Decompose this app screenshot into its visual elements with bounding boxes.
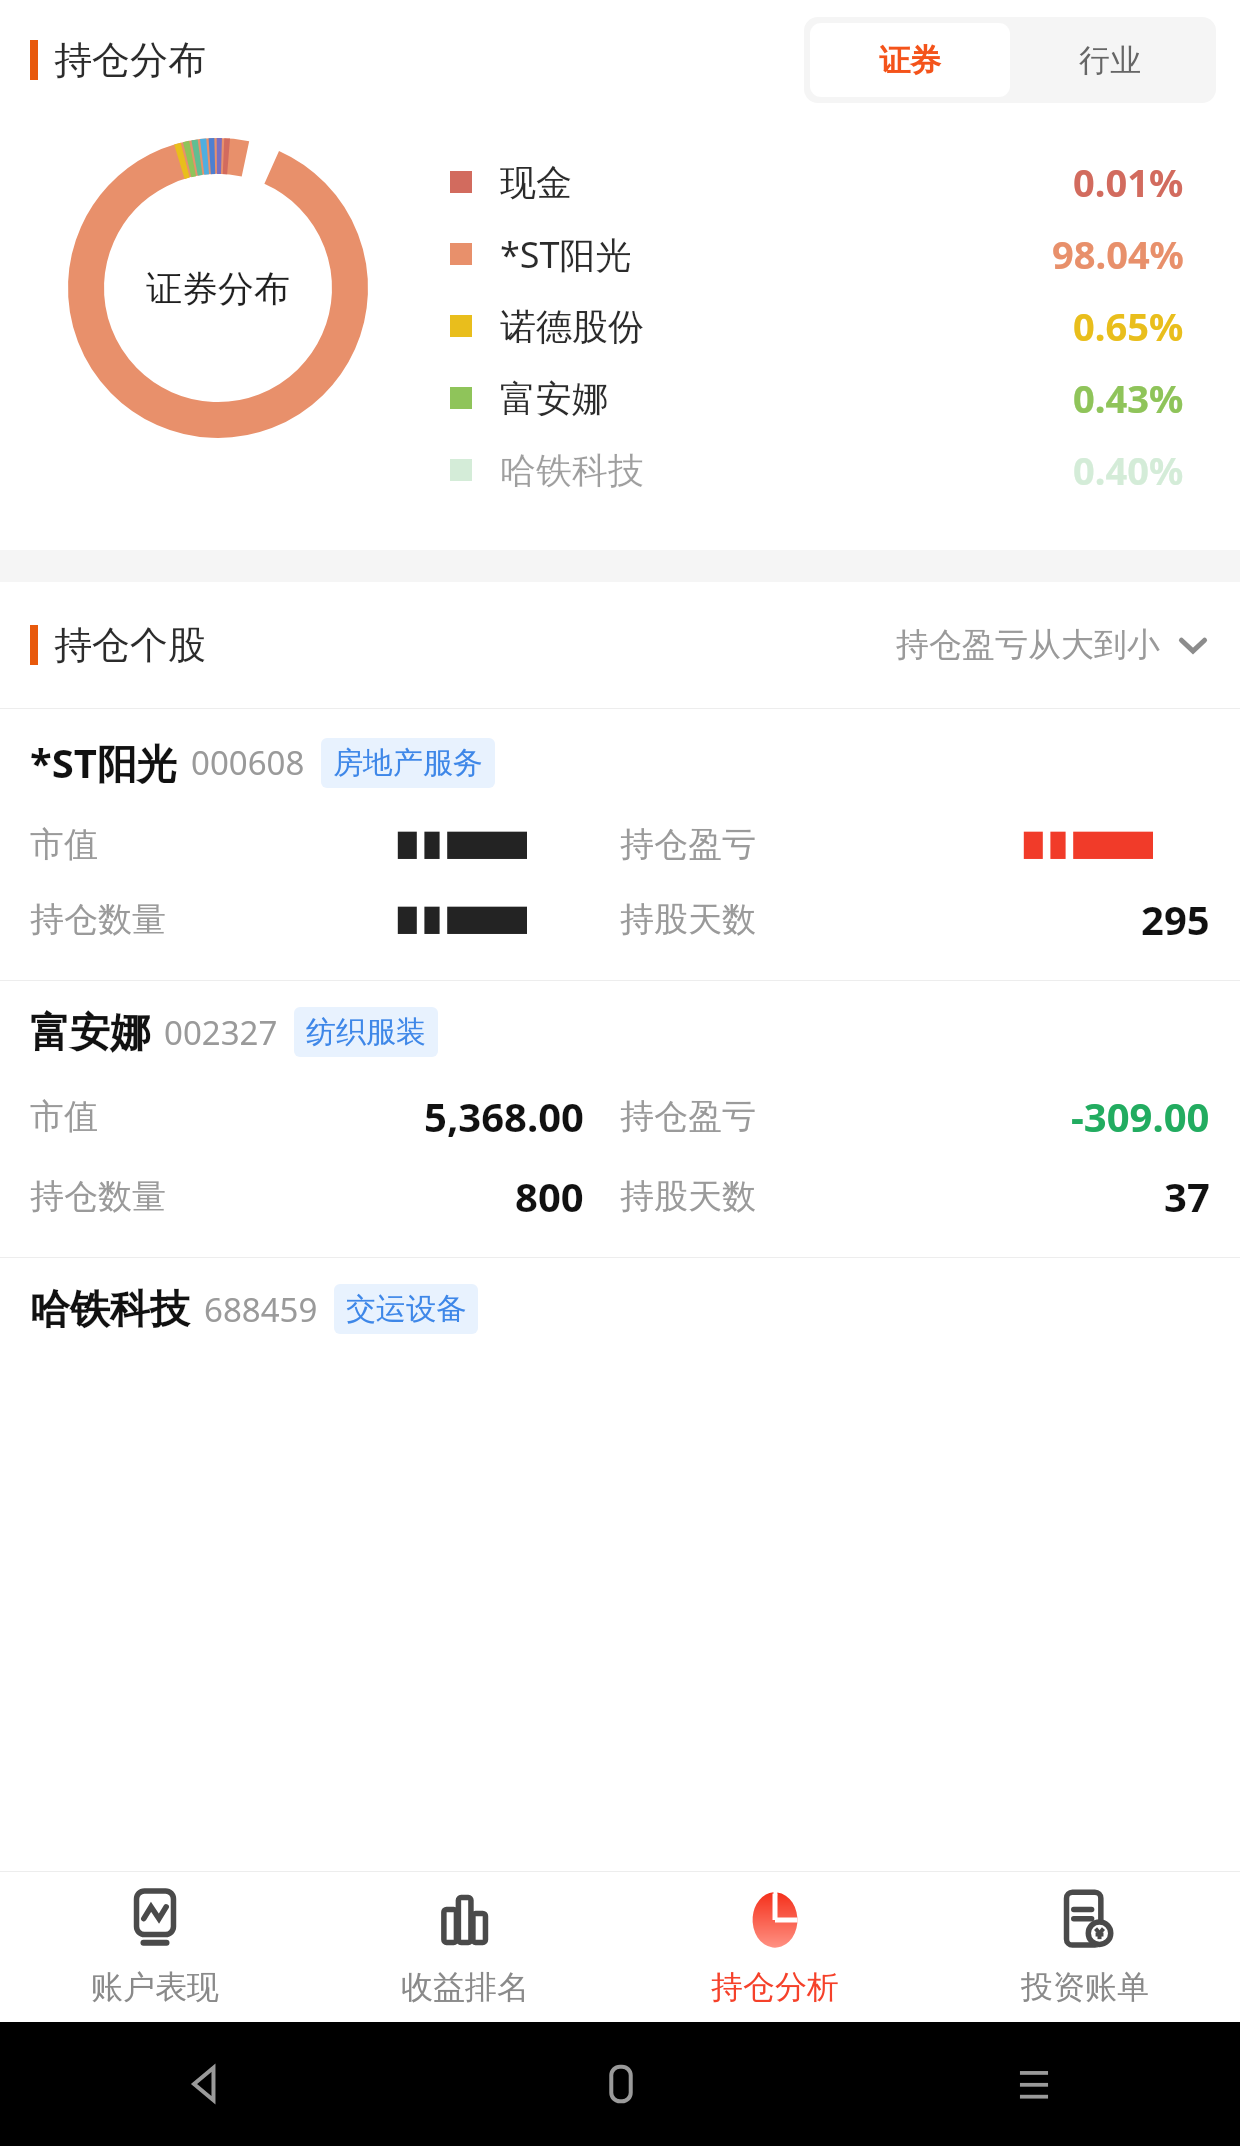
staticText: 现金: [500, 160, 572, 205]
staticText: *ST阳光: [30, 735, 177, 790]
staticText: 富安娜: [30, 1007, 150, 1057]
button[interactable]: 富安娜: [450, 362, 1240, 434]
button[interactable]: Recents: [827, 2022, 1240, 2146]
button[interactable]: 投资账单: [930, 1872, 1240, 2022]
staticText: 收益排名: [401, 1967, 529, 2007]
staticText: 持仓数量: [30, 1175, 166, 1218]
staticText: 002327: [164, 1010, 278, 1055]
button[interactable]: 诺德股份: [450, 290, 1240, 362]
button[interactable]: 账户表现: [0, 1872, 310, 2022]
button[interactable]: 持仓盈亏从大到小: [896, 624, 1210, 666]
button[interactable]: 行业: [1010, 23, 1210, 97]
staticText: 纺织服装: [306, 1013, 426, 1051]
staticText: 市值: [30, 1095, 98, 1138]
button[interactable]: 持仓分析: [620, 1872, 930, 2022]
staticText: 295: [1141, 892, 1210, 946]
staticText: 哈铁科技: [30, 1284, 190, 1334]
staticText: 证券分布: [146, 266, 290, 311]
button[interactable]: 收益排名: [310, 1872, 620, 2022]
staticText: 0.43%: [1073, 372, 1184, 424]
staticText: 5,368.00: [424, 1089, 584, 1143]
staticText: 688459: [204, 1287, 318, 1332]
staticText: 账户表现: [91, 1967, 219, 2007]
staticText: 持股天数: [620, 1175, 756, 1218]
staticText: 37: [1164, 1169, 1210, 1223]
staticText: 持仓盈亏: [620, 1095, 756, 1138]
staticText: 持仓盈亏: [620, 823, 756, 866]
button[interactable]: *ST阳光: [450, 218, 1240, 290]
button[interactable]: 哈铁科技: [0, 1258, 1240, 1360]
button[interactable]: 富安娜: [0, 981, 1240, 1257]
staticText: 0.01%: [1073, 156, 1184, 208]
button[interactable]: 现金: [450, 146, 1240, 218]
staticText: 持仓盈亏从大到小: [896, 624, 1160, 666]
staticText: 富安娜: [500, 376, 608, 421]
button[interactable]: 证券: [810, 23, 1010, 97]
staticText: 哈铁科技: [500, 448, 644, 493]
staticText: 800: [515, 1169, 584, 1223]
staticText: 持股天数: [620, 898, 756, 941]
staticText: 诺德股份: [500, 304, 644, 349]
staticText: 房地产服务: [333, 744, 483, 782]
staticText: -309.00: [1071, 1089, 1210, 1143]
staticText: *ST阳光: [500, 230, 632, 279]
staticText: 98.04%: [1052, 228, 1184, 280]
button[interactable]: Back: [0, 2022, 414, 2146]
staticText: 0.40%: [1073, 444, 1184, 496]
staticText: 持仓数量: [30, 898, 166, 941]
button[interactable]: 哈铁科技: [450, 434, 1240, 506]
staticText: 投资账单: [1021, 1967, 1149, 2007]
staticText: 证券: [879, 41, 941, 80]
staticText: 持仓分析: [711, 1967, 839, 2007]
staticText: 交运设备: [346, 1290, 466, 1328]
staticText: 持仓分布: [54, 36, 206, 84]
button[interactable]: Home: [414, 2022, 827, 2146]
staticText: 000608: [191, 740, 305, 785]
staticText: 持仓个股: [54, 621, 206, 669]
staticText: 0.65%: [1073, 300, 1184, 352]
staticText: 行业: [1079, 41, 1141, 80]
button[interactable]: *ST阳光: [0, 709, 1240, 980]
staticText: 市值: [30, 823, 98, 866]
